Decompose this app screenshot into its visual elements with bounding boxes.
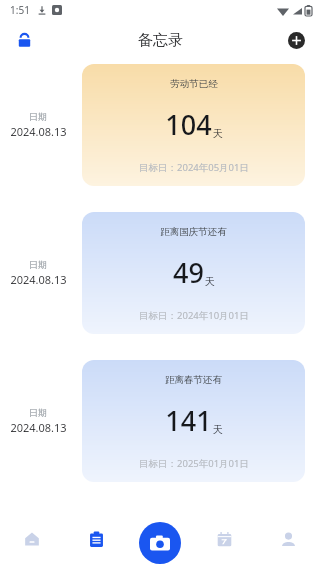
staticText: 天 bbox=[213, 423, 223, 436]
staticText: 日期 bbox=[29, 259, 47, 270]
staticText: 距离春节还有 bbox=[165, 374, 222, 386]
staticText: 劳动节已经 bbox=[170, 78, 218, 90]
button[interactable]: Notes bbox=[64, 510, 128, 568]
staticText: 2024.08.13 bbox=[10, 272, 67, 287]
staticText: 距离国庆节还有 bbox=[160, 226, 227, 238]
staticText: 1:51 bbox=[10, 3, 30, 17]
staticText: 目标日：2025年01月01日 bbox=[139, 457, 249, 470]
staticText: 2024.08.13 bbox=[10, 124, 67, 139]
button[interactable]: Home bbox=[0, 510, 64, 568]
staticText: 日期 bbox=[29, 111, 47, 122]
button[interactable]: Camera bbox=[139, 522, 181, 564]
staticText: 2024.08.13 bbox=[10, 420, 67, 435]
staticText: 天 bbox=[213, 127, 223, 140]
staticText: 目标日：2024年10月01日 bbox=[139, 309, 249, 322]
staticText: 141 bbox=[165, 402, 212, 439]
button[interactable]: Calendar bbox=[192, 510, 256, 568]
button[interactable]: 劳动节已经 bbox=[82, 64, 305, 186]
button[interactable]: 距离国庆节还有 bbox=[82, 212, 305, 334]
staticText: 目标日：2024年05月01日 bbox=[139, 161, 249, 174]
button[interactable]: Lock bbox=[8, 24, 40, 56]
staticText: 天 bbox=[205, 275, 215, 288]
button[interactable]: 距离春节还有 bbox=[82, 360, 305, 482]
staticText: 104 bbox=[165, 106, 212, 143]
button[interactable]: Profile bbox=[256, 510, 320, 568]
staticText: 日期 bbox=[29, 407, 47, 418]
staticText: 备忘录 bbox=[138, 31, 183, 50]
button[interactable]: Add bbox=[280, 24, 312, 56]
staticText: 49 bbox=[173, 254, 204, 291]
